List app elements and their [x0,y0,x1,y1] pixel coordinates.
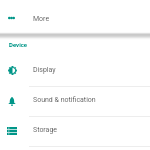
staticText: More [33,15,50,23]
staticText: Device [9,41,28,48]
button[interactable]: Storage [0,116,150,146]
button[interactable]: Sound and notification [0,86,150,116]
button[interactable]: Display [0,55,150,86]
other: More [8,16,15,20]
other: Storage [7,127,17,135]
staticText: Display [33,66,56,74]
other: Sound and notification [8,97,16,106]
staticText: Storage [33,126,58,134]
button[interactable]: More [0,0,150,31]
staticText: Sound & notification [33,96,96,104]
other: Display [8,66,17,75]
